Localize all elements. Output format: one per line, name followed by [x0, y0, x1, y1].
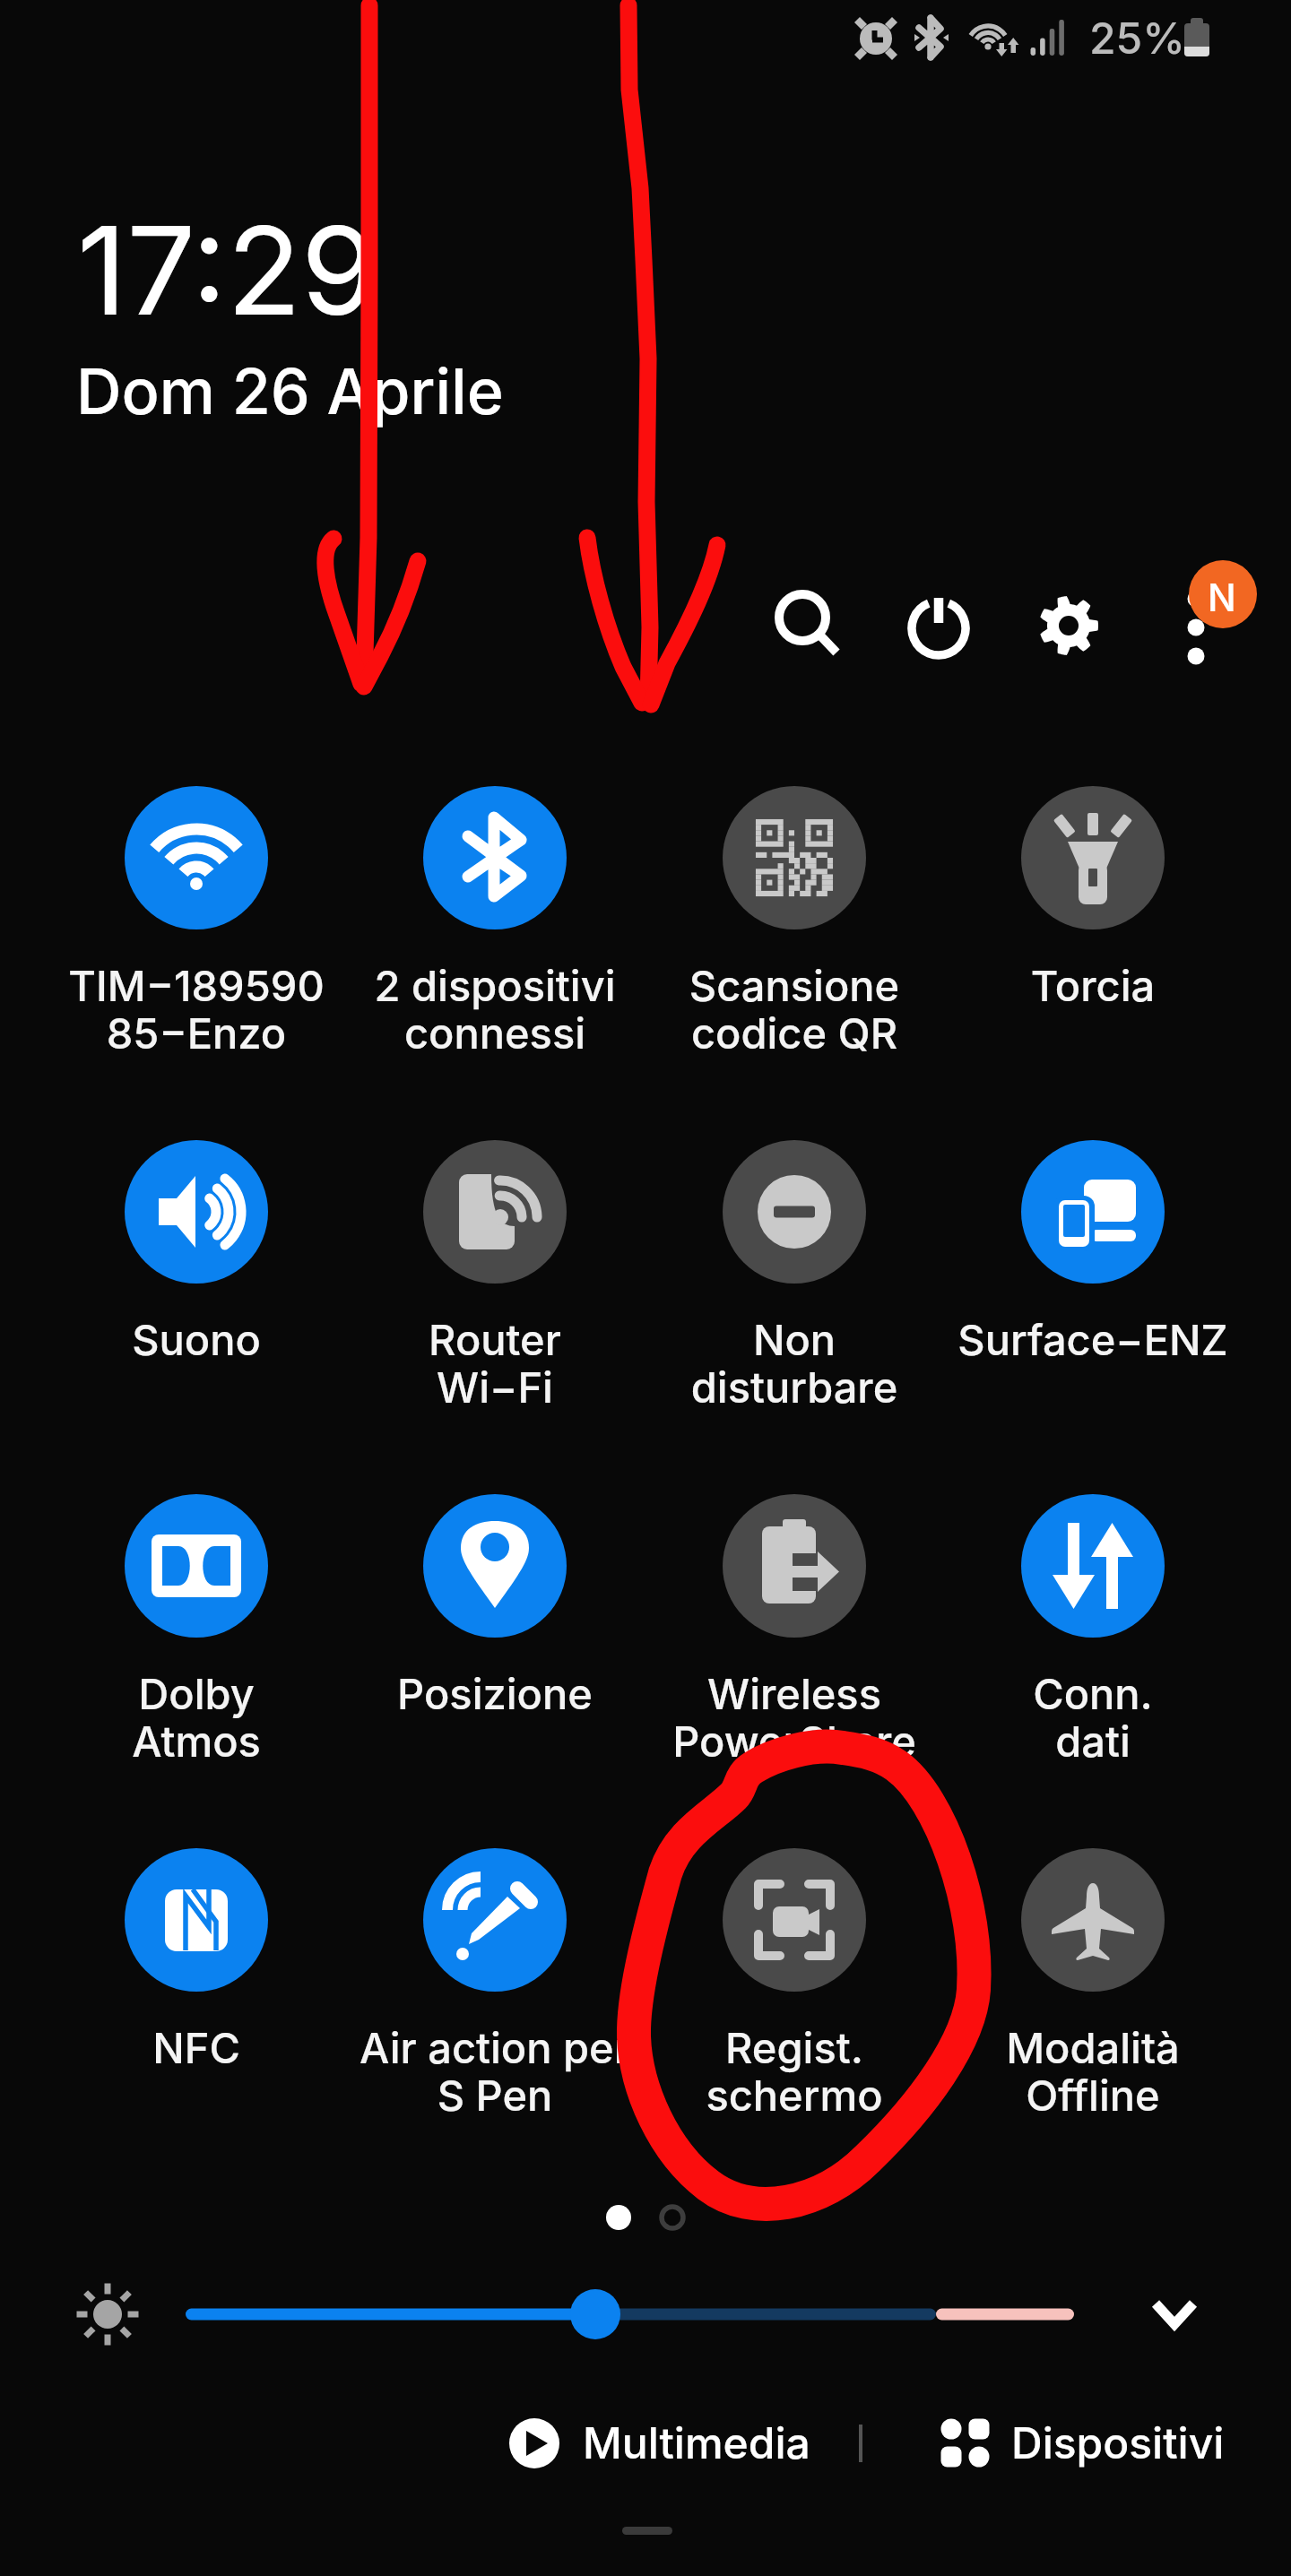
button[interactable]: Posizione	[347, 1463, 643, 1768]
staticText: Conn. dati	[945, 1668, 1241, 1767]
button[interactable]: Accensione	[846, 575, 947, 675]
button[interactable]: Cerca	[715, 575, 815, 675]
staticText: NFC	[48, 2022, 344, 2073]
button[interactable]: Impostazioni	[976, 575, 1077, 675]
staticText: Torcia	[945, 960, 1241, 1011]
button[interactable]: Wireless PowerShare	[646, 1463, 942, 1768]
button[interactable]: NFC	[48, 1817, 344, 2122]
staticText: 25%	[1089, 12, 1185, 64]
button[interactable]: Conn. dati	[945, 1463, 1241, 1768]
staticText: Surface−ENZ	[945, 1314, 1241, 1365]
staticText: Dom 26 Aprile	[76, 353, 504, 429]
staticText: TIM−189590 85−Enzo	[48, 960, 344, 1059]
button[interactable]: Scansione codice QR	[646, 755, 942, 1059]
staticText: Wireless PowerShare	[646, 1668, 942, 1767]
button[interactable]: TIM−189590 85−Enzo	[48, 755, 344, 1059]
staticText: Dispositivi	[1011, 2416, 1225, 2468]
button[interactable]: Dispositivi	[914, 2395, 1228, 2492]
staticText: Multimedia	[583, 2416, 810, 2468]
button[interactable]: Dolby Atmos	[48, 1463, 344, 1768]
button[interactable]: Regist. schermo	[646, 1817, 942, 2122]
button[interactable]: 2 dispositivi connessi	[347, 755, 643, 1059]
button[interactable]: Modalità Offline	[945, 1817, 1241, 2122]
staticText: Router Wi−Fi	[347, 1314, 643, 1413]
staticText: Regist. schermo	[646, 2022, 942, 2121]
button[interactable]: Non disturbare	[646, 1109, 942, 1413]
button[interactable]: Air action per S Pen	[347, 1817, 643, 2122]
staticText: Air action per S Pen	[347, 2022, 643, 2121]
staticText: 17:29	[77, 196, 377, 344]
staticText: N	[1208, 575, 1236, 620]
staticText: Scansione codice QR	[646, 960, 942, 1059]
staticText: Modalità Offline	[945, 2022, 1241, 2121]
staticText: Non disturbare	[646, 1314, 942, 1413]
button[interactable]: Multimedia	[502, 2395, 825, 2492]
staticText: Posizione	[347, 1668, 643, 1719]
button[interactable]: Router Wi−Fi	[347, 1109, 643, 1413]
button[interactable]: Suono	[48, 1109, 344, 1413]
button[interactable]: Altre opzioni	[1105, 575, 1205, 675]
staticText: 2 dispositivi connessi	[347, 960, 643, 1059]
button[interactable]: Surface−ENZ	[945, 1109, 1241, 1413]
staticText: Dolby Atmos	[48, 1668, 344, 1767]
button[interactable]: Torcia	[945, 755, 1241, 1059]
staticText: Suono	[48, 1314, 344, 1365]
